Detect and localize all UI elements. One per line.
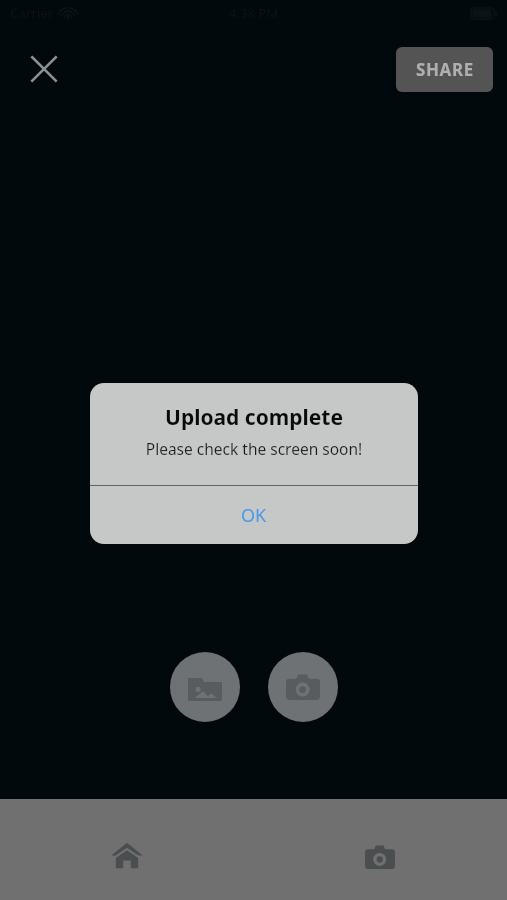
button[interactable]: Take photo	[268, 652, 338, 722]
staticText: Upload complete	[90, 403, 418, 432]
staticText: OK	[241, 503, 267, 528]
button[interactable]: Close	[20, 45, 68, 93]
button[interactable]: Camera	[253, 799, 507, 900]
staticText: Please check the screen soon!	[90, 438, 418, 459]
staticText: SHARE	[416, 58, 474, 81]
button[interactable]: SHARE	[396, 47, 493, 92]
button[interactable]: Choose from gallery	[170, 652, 240, 722]
button[interactable]: Home	[0, 799, 253, 900]
button[interactable]: OK	[90, 486, 418, 544]
